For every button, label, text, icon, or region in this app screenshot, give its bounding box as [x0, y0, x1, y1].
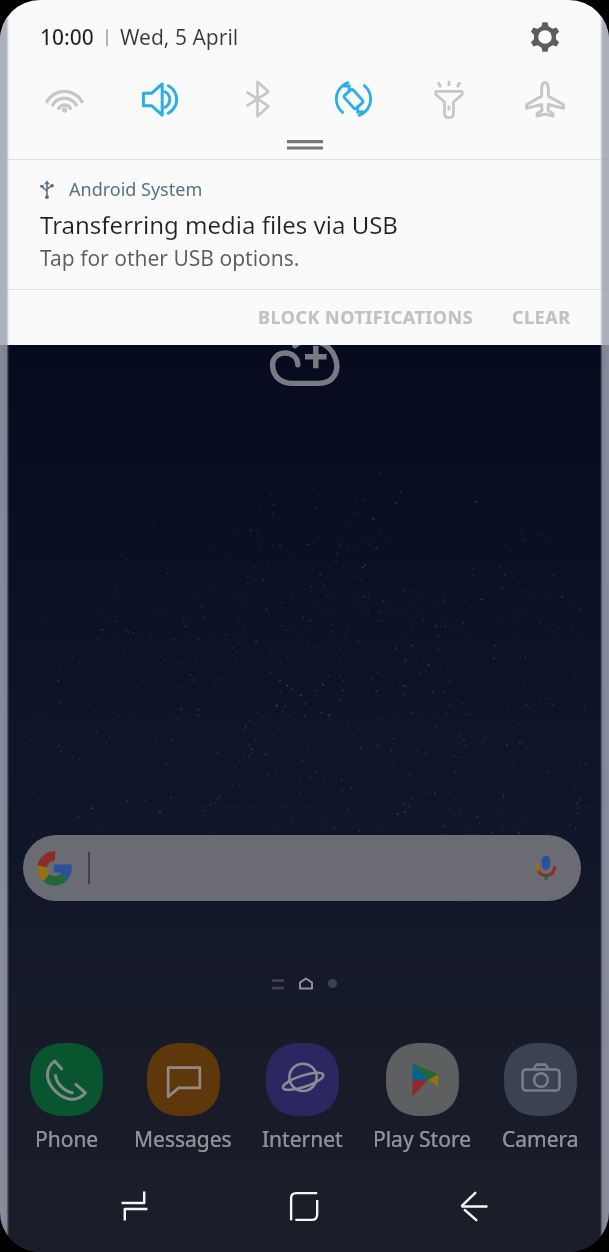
button[interactable]: Messages [134, 1043, 232, 1154]
button[interactable]: Home [219, 1160, 389, 1252]
button[interactable]: Auto rotate [305, 74, 401, 124]
staticText: CLEAR [512, 305, 571, 330]
button[interactable]: Play Store [373, 1043, 471, 1154]
button[interactable]: Flashlight [401, 74, 497, 124]
button[interactable]: Sound [113, 74, 209, 124]
button[interactable]: CLEAR [500, 293, 583, 342]
button[interactable]: Wi-Fi [16, 74, 113, 124]
staticText: Transferring media files via USB [40, 208, 398, 241]
staticText: Messages [134, 1125, 232, 1154]
staticText: Play Store [373, 1125, 471, 1154]
staticText: Phone [35, 1125, 99, 1154]
staticText: Android System [69, 177, 203, 202]
staticText: Wed, 5 April [120, 23, 239, 52]
button[interactable]: Recent apps [50, 1160, 219, 1252]
button[interactable]: Settings [521, 13, 569, 61]
staticText: BLOCK NOTIFICATIONS [258, 305, 474, 330]
button[interactable]: Search [23, 835, 581, 901]
button[interactable]: Camera [502, 1043, 579, 1154]
button[interactable]: Bluetooth [209, 74, 305, 124]
staticText: Tap for other USB options. [40, 244, 300, 273]
button[interactable]: BLOCK NOTIFICATIONS [246, 293, 486, 342]
button[interactable]: Airplane mode [497, 74, 593, 124]
staticText: 10:00 [40, 23, 94, 52]
button[interactable]: Internet [262, 1043, 343, 1154]
button[interactable]: Phone [30, 1043, 103, 1154]
staticText: Internet [262, 1125, 343, 1154]
button[interactable]: Back [389, 1160, 559, 1252]
staticText: Camera [502, 1125, 579, 1154]
button[interactable]: Android System [0, 160, 609, 289]
